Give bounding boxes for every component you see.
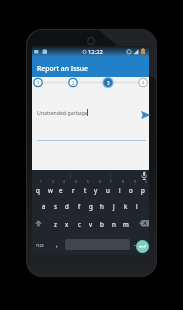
staticText: 8 <box>122 180 124 184</box>
staticText: 12:22 <box>88 48 103 56</box>
staticText: 4 <box>142 80 145 86</box>
staticText: x <box>65 220 69 228</box>
staticText: 7 <box>110 180 112 184</box>
staticText: . <box>134 240 136 248</box>
staticText: p <box>141 186 145 194</box>
staticText: e <box>59 186 63 194</box>
staticText: 1 <box>37 80 40 86</box>
button[interactable]: v <box>85 218 97 230</box>
staticText: f <box>78 202 81 210</box>
staticText: 9 <box>134 180 136 184</box>
staticText: 5 <box>87 180 89 184</box>
button[interactable]: d <box>61 200 73 212</box>
staticText: ?123 <box>36 243 44 248</box>
staticText: 4 <box>75 180 77 184</box>
button[interactable]: a <box>38 200 50 212</box>
staticText: h <box>100 202 104 210</box>
staticText: l <box>136 202 138 210</box>
button[interactable]: w <box>44 184 56 196</box>
staticText: , <box>56 241 58 249</box>
button[interactable] <box>138 170 150 182</box>
staticText: n <box>112 220 116 228</box>
staticText: Unattended garbage <box>37 109 88 116</box>
staticText: Report an Issue <box>37 64 88 73</box>
button[interactable]: x <box>61 218 73 230</box>
staticText: 1 <box>40 180 42 184</box>
staticText: w <box>48 186 53 194</box>
button[interactable] <box>139 108 152 121</box>
staticText: 2 <box>52 180 54 184</box>
staticText: d <box>65 202 69 210</box>
button[interactable]: m <box>120 218 132 230</box>
button[interactable]: Report an Issue <box>32 57 149 77</box>
staticText: 3 <box>107 80 110 86</box>
staticText: j <box>113 202 115 210</box>
button[interactable]: u <box>102 184 114 196</box>
button[interactable]: e <box>55 184 67 196</box>
button[interactable]: ?123 <box>33 239 47 251</box>
button[interactable]: i <box>114 184 126 196</box>
button[interactable]: s <box>49 200 61 212</box>
staticText: v <box>89 220 93 228</box>
button[interactable]: h <box>96 200 108 212</box>
button[interactable]: o <box>125 184 137 196</box>
button[interactable]: l <box>131 200 143 212</box>
button[interactable]: n <box>108 218 120 230</box>
staticText: u <box>106 186 110 194</box>
button[interactable] <box>32 217 45 230</box>
button[interactable]: f <box>73 200 85 212</box>
staticText: i <box>119 186 121 194</box>
staticText: b <box>100 220 104 228</box>
staticText: t <box>84 186 87 194</box>
button[interactable]: k <box>120 200 132 212</box>
staticText: r <box>72 186 75 194</box>
button[interactable]: q <box>32 184 44 196</box>
staticText: s <box>54 202 57 210</box>
staticText: k <box>124 202 128 210</box>
staticText: y <box>94 186 98 194</box>
staticText: m <box>123 220 129 228</box>
button[interactable]: r <box>67 184 79 196</box>
button[interactable]: z <box>49 218 61 230</box>
staticText: 3 <box>63 180 65 184</box>
staticText: g <box>89 202 93 210</box>
button[interactable]: j <box>108 200 120 212</box>
button[interactable]: y <box>90 184 102 196</box>
staticText: o <box>129 186 133 194</box>
button[interactable]: p <box>137 184 149 196</box>
staticText: 0 <box>145 180 147 184</box>
button[interactable]: t <box>79 184 91 196</box>
button[interactable]: g <box>85 200 97 212</box>
staticText: a <box>42 202 46 210</box>
staticText: 6 <box>99 180 101 184</box>
button[interactable]: c <box>73 218 85 230</box>
staticText: q <box>36 186 40 194</box>
button[interactable]: b <box>96 218 108 230</box>
staticText: 2 <box>72 80 75 86</box>
button[interactable] <box>138 217 151 230</box>
button[interactable] <box>136 240 149 253</box>
staticText: c <box>78 220 81 228</box>
staticText: z <box>54 220 57 228</box>
